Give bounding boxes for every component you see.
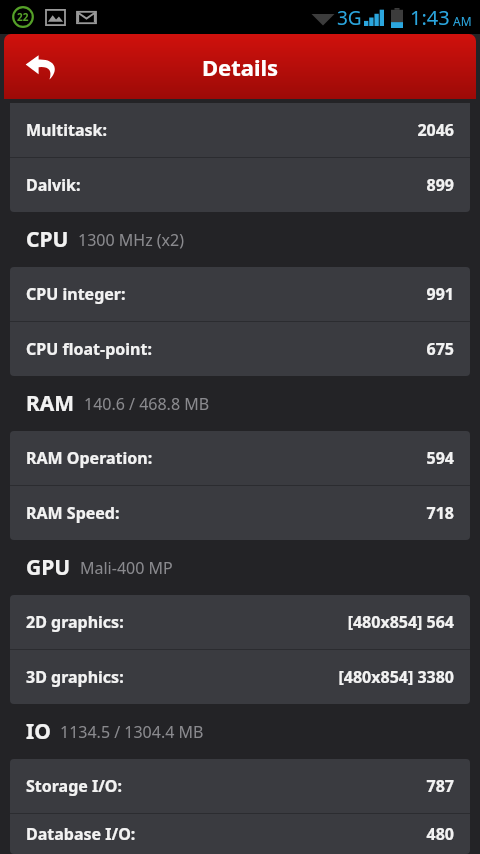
staticText: 718 (426, 502, 454, 524)
button[interactable]: 2D graphics: (10, 595, 470, 649)
staticText: Database I/O: (26, 823, 136, 845)
staticText: Multitask: (26, 119, 107, 141)
button[interactable]: Storage I/O: (10, 759, 470, 813)
staticText: 1134.5 / 1304.4 MB (60, 721, 204, 743)
button[interactable]: Database I/O: (10, 814, 470, 854)
staticText: 22 (17, 10, 29, 24)
button[interactable]: Back (14, 39, 70, 95)
staticText: CPU integer: (26, 283, 126, 305)
button[interactable]: CPU float-point: (10, 322, 470, 376)
staticText: 2D graphics: (26, 611, 124, 633)
staticText: Storage I/O: (26, 775, 123, 797)
button[interactable]: RAM Operation: (10, 431, 470, 485)
staticText: Details (202, 52, 279, 82)
staticText: RAM Operation: (26, 447, 153, 469)
button[interactable]: Dalvik: (10, 158, 470, 212)
staticText: RAM (26, 389, 75, 418)
staticText: 140.6 / 468.8 MB (84, 393, 210, 415)
button[interactable]: RAM Speed: (10, 486, 470, 540)
staticText: 480 (426, 823, 454, 845)
staticText: 3D graphics: (26, 666, 124, 688)
staticText: 3G (337, 5, 362, 31)
staticText: Dalvik: (26, 174, 81, 196)
button[interactable]: 3D graphics: (10, 650, 470, 704)
staticText: RAM Speed: (26, 502, 120, 524)
staticText: 899 (426, 174, 454, 196)
staticText: GPU (26, 553, 71, 582)
staticText: CPU float-point: (26, 338, 152, 360)
staticText: 991 (426, 283, 454, 305)
button[interactable]: CPU integer: (10, 267, 470, 321)
staticText: 2046 (417, 119, 454, 141)
staticText: 675 (426, 338, 454, 360)
staticText: 787 (426, 775, 454, 797)
staticText: 1:43 (410, 4, 450, 31)
staticText: CPU (26, 225, 69, 254)
staticText: [480x854] 3380 (338, 666, 454, 688)
staticText: IO (26, 717, 51, 746)
staticText: 594 (426, 447, 454, 469)
button[interactable]: Multitask: (10, 103, 470, 157)
staticText: 1300 MHz (x2) (78, 229, 185, 251)
staticText: Mali-400 MP (80, 557, 173, 579)
staticText: AM (453, 13, 472, 29)
staticText: [480x854] 564 (347, 611, 454, 633)
